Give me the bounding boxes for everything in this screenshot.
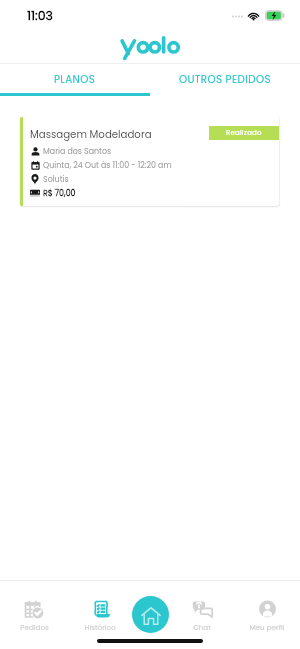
staticText: Pedidos [20, 622, 49, 632]
button[interactable]: OUTROS PEDIDOS [150, 64, 300, 93]
staticText: R$ 70,00 [43, 188, 76, 199]
button[interactable]: Home [132, 596, 169, 633]
button[interactable]: Histórico [75, 597, 125, 635]
staticText: Solutis [43, 174, 69, 185]
button[interactable]: Realizado [20, 117, 279, 206]
button[interactable]: Chat [177, 597, 227, 635]
staticText: Maria dos Santos [43, 146, 112, 157]
button[interactable]: Realizado [209, 126, 279, 140]
button[interactable]: Pedidos [9, 597, 59, 635]
button[interactable]: Meu perfil [242, 597, 292, 635]
staticText: Quinta, 24 Out às 11:00 - 12:20 am [43, 160, 172, 171]
staticText: Meu perfil [249, 622, 285, 632]
button[interactable]: PLANOS [0, 64, 150, 93]
staticText: PLANOS [54, 72, 96, 86]
staticText: Realizado [226, 128, 262, 138]
staticText: Histórico [84, 622, 116, 632]
staticText: Chat [193, 622, 211, 632]
staticText: 11:03 [27, 7, 53, 24]
staticText: OUTROS PEDIDOS [179, 72, 271, 86]
staticText: Massagem Modeladora [30, 127, 152, 141]
